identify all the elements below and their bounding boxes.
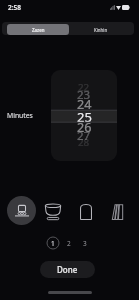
staticText: Done [57, 264, 78, 275]
button[interactable]: Wood block [71, 201, 100, 222]
button[interactable]: 2 [62, 236, 76, 250]
staticText: 22 [78, 81, 90, 94]
button[interactable]: 3 [78, 236, 92, 250]
staticText: 24 [77, 96, 92, 110]
staticText: 3 [83, 239, 87, 248]
staticText: 28 [78, 136, 90, 149]
button[interactable]: Kinhin [70, 24, 132, 35]
staticText: Minutes [7, 111, 33, 120]
button[interactable]: 1 [46, 236, 60, 250]
button[interactable]: Zazen [7, 24, 69, 35]
staticText: Zazen [32, 27, 45, 33]
button[interactable]: Clappers [103, 201, 132, 222]
staticText: 23 [77, 87, 91, 101]
button[interactable]: Bell gong [7, 196, 36, 225]
staticText: 26 [77, 119, 92, 133]
staticText: 25 [77, 108, 92, 122]
staticText: 2 [67, 239, 71, 248]
staticText: Kinhin [94, 27, 108, 33]
staticText: 1 [51, 239, 55, 248]
button[interactable]: Singing bowl [38, 201, 67, 222]
staticText: 2:58 [8, 3, 21, 12]
staticText: 27 [77, 128, 91, 142]
button[interactable]: Bell gong [7, 201, 36, 222]
button[interactable]: Done [40, 261, 95, 278]
